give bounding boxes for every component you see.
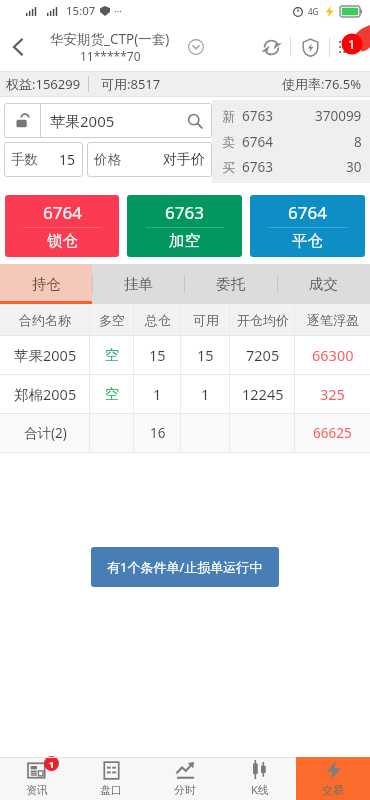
staticText: 买 [222,159,235,175]
staticText: 手数 [11,151,38,168]
staticText: 分时 [174,783,196,797]
staticText: 平仓 [292,231,323,251]
staticText: 11*****70 [80,48,141,64]
staticText: 325 [320,384,345,404]
button[interactable]: 苹果2005 [4,103,212,138]
staticText: 合计(2) [24,424,67,442]
staticText: 新 [222,108,235,124]
staticText: 对手价 [163,151,205,169]
staticText: 6764 [242,133,273,151]
button[interactable]: 委托 [184,264,277,304]
staticText: 空 [105,385,120,403]
button[interactable]: 分时 [148,757,222,800]
staticText: K线 [251,782,269,797]
button[interactable]: 权益:156299 [0,71,370,97]
button[interactable]: 成交 [277,264,370,304]
staticText: 卖 [222,134,235,150]
staticText: 1 [153,384,162,404]
staticText: 资讯 [26,783,48,797]
staticText: 1 [49,758,55,770]
staticText: 8 [354,133,362,151]
button[interactable]: 苹果2005 [0,336,370,374]
button[interactable]: 1 [0,757,74,800]
staticText: 15:07 [66,3,96,19]
button[interactable]: Switch account [184,35,208,59]
staticText: 30 [346,158,362,176]
button[interactable]: 郑棉2005 [0,375,370,413]
staticText: 15 [197,345,214,365]
button[interactable]: K线 [222,757,296,800]
staticText: 370099 [315,107,362,125]
button[interactable]: 价格 [87,142,212,177]
staticText: 持仓 [32,275,61,293]
staticText: 空 [105,346,120,364]
staticText: 6763 [242,107,273,125]
button[interactable]: 持仓 [0,264,92,304]
staticText: 15 [59,150,76,169]
button[interactable]: 新 [212,100,370,183]
staticText: 逐笔浮盈 [307,312,359,328]
staticText: 1 [201,384,210,404]
button[interactable]: 有1个条件单/止损单运行中 [91,547,279,587]
button[interactable]: 6764 [250,195,365,257]
staticText: 12245 [242,384,284,404]
button[interactable]: Security [291,27,329,67]
staticText: 15 [149,345,166,365]
staticText: 挂单 [124,275,153,293]
staticText: 可用:8517 [101,75,161,93]
staticText: 苹果2005 [50,111,115,131]
button[interactable]: Back [0,29,36,65]
staticText: 有1个条件单/止损单运行中 [107,558,263,576]
button[interactable]: 手数 [4,142,83,177]
staticText: 66625 [313,424,352,442]
staticText: 郑棉2005 [14,384,77,404]
staticText: 成交 [309,275,338,293]
staticText: 合约名称 [19,312,71,328]
staticText: 6764 [43,201,82,224]
button[interactable]: 合计(2) [0,414,370,452]
button[interactable]: 交易 [296,757,370,800]
button[interactable]: 6764 [5,195,119,257]
staticText: 总仓 [145,312,171,328]
staticText: 7205 [246,345,280,365]
staticText: 委托 [216,275,245,293]
staticText: 加空 [169,231,200,251]
staticText: 使用率:76.5% [282,75,362,93]
staticText: 锁仓 [47,231,78,251]
staticText: 苹果2005 [14,345,77,365]
staticText: 1 [348,35,356,53]
staticText: 交易 [322,783,344,797]
staticText: 华安期货_CTP(一套) [50,30,170,48]
staticText: 66300 [312,345,354,365]
staticText: 4G [308,6,319,17]
staticText: 16 [150,424,166,442]
staticText: 价格 [94,151,121,168]
staticText: 权益:156299 [6,75,81,93]
staticText: 6764 [288,201,327,224]
button[interactable]: Menu [330,27,364,67]
button[interactable]: 挂单 [92,264,184,304]
staticText: 可用 [193,312,219,328]
staticText: 6763 [165,201,204,224]
button[interactable]: 盘口 [74,757,148,800]
staticText: 6763 [242,158,273,176]
staticText: 开仓均价 [237,312,289,328]
button[interactable]: 6763 [127,195,242,257]
staticText: ··· [114,4,123,18]
staticText: 多空 [99,312,125,328]
button[interactable]: Refresh [252,27,290,67]
staticText: 盘口 [100,783,122,797]
